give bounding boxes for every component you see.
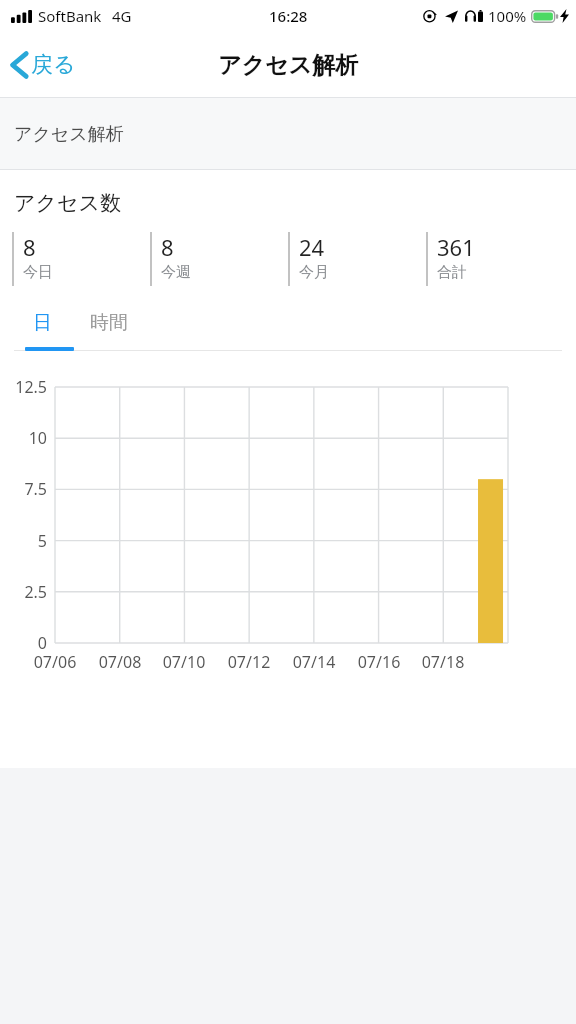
staticText: 日	[33, 311, 52, 335]
staticText: 12.5	[0, 376, 47, 398]
staticText: 8	[23, 232, 36, 262]
staticText: 07/06	[22, 651, 88, 673]
staticText: 361	[437, 232, 475, 262]
staticText: 今月	[299, 263, 329, 282]
staticText: 8	[161, 232, 174, 262]
staticText: 10	[0, 427, 47, 449]
staticText: 07/10	[151, 651, 217, 673]
button[interactable]: 8	[150, 232, 288, 286]
staticText: 07/16	[346, 651, 412, 673]
staticText: 7.5	[0, 478, 47, 500]
staticText: 16:28	[269, 6, 308, 26]
staticText: 5	[0, 530, 47, 552]
staticText: 07/18	[410, 651, 476, 673]
staticText: 07/14	[281, 651, 347, 673]
staticText: アクセス解析	[218, 51, 359, 80]
button[interactable]: 24	[288, 232, 426, 286]
staticText: 24	[299, 232, 325, 262]
staticText: 07/08	[87, 651, 153, 673]
button[interactable]: 戻る	[0, 44, 88, 86]
staticText: 今週	[161, 263, 191, 282]
staticText: SoftBank	[38, 6, 102, 26]
button[interactable]: 361	[426, 232, 564, 286]
button[interactable]: 日	[25, 308, 60, 338]
staticText: 4G	[112, 6, 132, 26]
staticText: 2.5	[0, 581, 47, 603]
staticText: 時間	[90, 311, 128, 335]
staticText: 合計	[437, 263, 467, 282]
staticText: 今日	[23, 263, 53, 282]
staticText: 戻る	[31, 51, 76, 79]
button[interactable]: 時間	[82, 308, 136, 338]
staticText: アクセス数	[14, 190, 121, 216]
staticText: 100%	[488, 6, 527, 26]
staticText: アクセス解析	[14, 123, 124, 146]
staticText: 07/12	[216, 651, 282, 673]
button[interactable]: 8	[12, 232, 150, 286]
staticText: 0	[0, 632, 47, 654]
